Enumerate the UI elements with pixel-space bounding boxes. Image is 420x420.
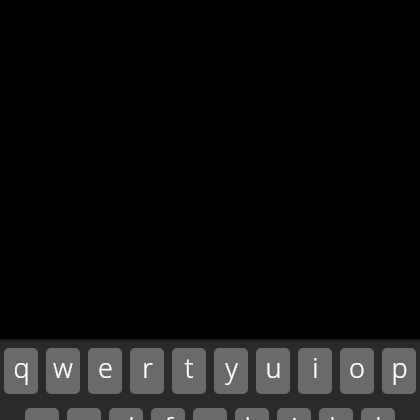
staticText: q xyxy=(13,349,30,386)
staticText: i xyxy=(312,349,319,386)
button[interactable]: w xyxy=(46,348,80,394)
button[interactable]: i xyxy=(298,348,332,394)
staticText: j xyxy=(291,409,298,420)
staticText: p xyxy=(391,349,408,386)
staticText: h xyxy=(244,409,261,420)
button[interactable]: p xyxy=(382,348,416,394)
button[interactable]: u xyxy=(256,348,290,394)
staticText: y xyxy=(225,349,238,386)
staticText: w xyxy=(53,349,73,386)
button[interactable]: y xyxy=(214,348,248,394)
staticText: f xyxy=(164,409,173,420)
staticText: d xyxy=(118,409,135,420)
button[interactable]: e xyxy=(88,348,122,394)
button[interactable]: f xyxy=(151,408,185,420)
button[interactable]: g xyxy=(193,408,227,420)
button[interactable]: l xyxy=(361,408,395,420)
button[interactable]: k xyxy=(319,408,353,420)
button[interactable]: h xyxy=(235,408,269,420)
button[interactable]: j xyxy=(277,408,311,420)
button[interactable]: o xyxy=(340,348,374,394)
button[interactable]: q xyxy=(4,348,38,394)
button[interactable]: r xyxy=(130,348,164,394)
staticText: l xyxy=(375,409,382,420)
button[interactable]: s xyxy=(67,408,101,420)
button[interactable]: a xyxy=(25,408,59,420)
button[interactable]: d xyxy=(109,408,143,420)
staticText: o xyxy=(349,349,365,386)
staticText: e xyxy=(98,349,113,386)
staticText: k xyxy=(329,409,343,420)
staticText: r xyxy=(142,349,153,386)
staticText: u xyxy=(265,349,282,386)
staticText: t xyxy=(184,349,194,386)
button[interactable]: t xyxy=(172,348,206,394)
